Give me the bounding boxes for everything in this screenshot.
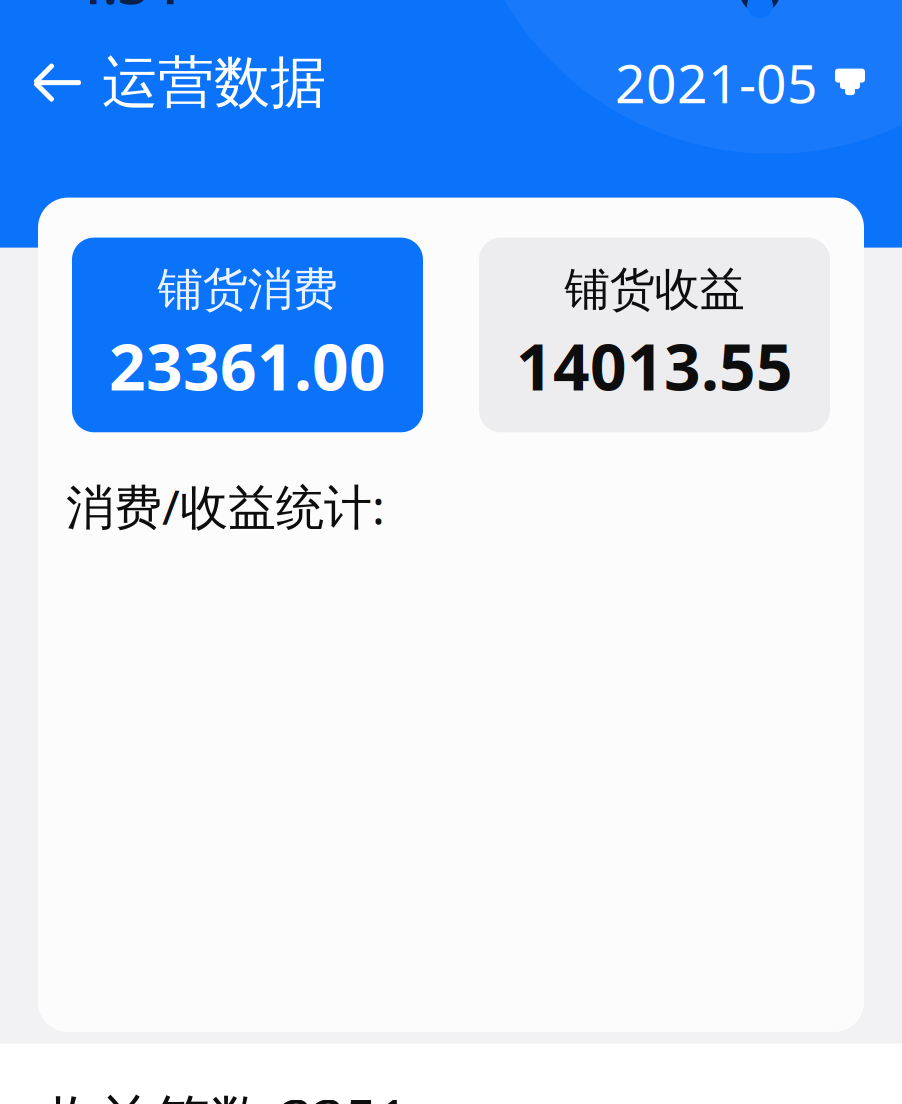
staticText: 23361.00 [109, 323, 386, 408]
staticText: 铺货消费 [157, 262, 337, 317]
staticText: 14013.55 [516, 323, 793, 408]
staticText: 4:34 [72, 0, 180, 19]
staticText: 2021-05 [615, 47, 818, 118]
button[interactable]: Back — 运营数据 [0, 38, 326, 127]
staticText: 运营数据 [102, 48, 326, 117]
staticText: 收益笔数:3351 [42, 1082, 409, 1104]
staticText: 消费/收益统计: [66, 474, 385, 538]
button[interactable]: 铺货消费 [72, 238, 423, 432]
button[interactable]: 铺货收益 [479, 238, 830, 432]
button[interactable]: 2021-05 [615, 37, 902, 128]
staticText: 铺货收益 [564, 262, 744, 317]
